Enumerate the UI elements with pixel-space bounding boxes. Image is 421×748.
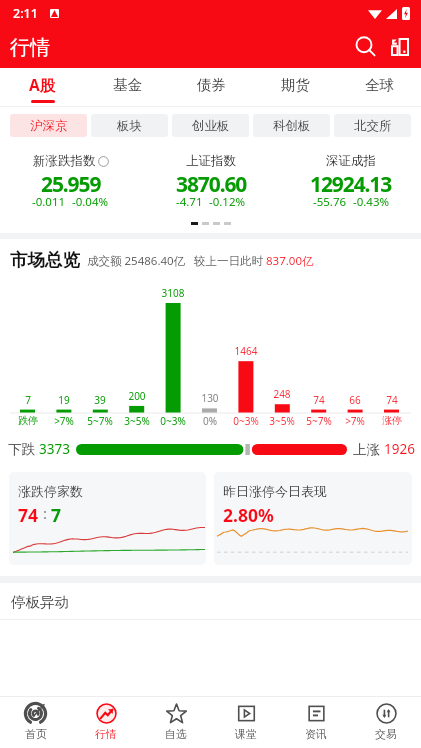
staticText: 深证成指 xyxy=(326,153,376,169)
staticText: 跌停 xyxy=(8,414,48,427)
staticText: 3~5% xyxy=(262,414,302,428)
staticText: 债券 xyxy=(197,76,226,94)
button[interactable]: 交易 xyxy=(351,697,421,748)
staticText: 涨停 xyxy=(372,414,412,427)
staticText: 资讯 xyxy=(305,727,327,741)
button[interactable]: 创业板 xyxy=(172,114,249,137)
button[interactable]: Market chart xyxy=(385,32,415,62)
staticText: 7 xyxy=(8,393,48,407)
staticText: >7% xyxy=(44,414,84,428)
staticText: 3870.60 xyxy=(176,170,247,199)
button[interactable]: 课堂 xyxy=(211,697,281,748)
staticText: 新涨跌指数 xyxy=(33,153,96,169)
button[interactable]: 基金 xyxy=(85,68,169,107)
staticText: 市场总览 xyxy=(10,249,80,271)
button[interactable]: 深证成指 xyxy=(281,143,421,222)
staticText: -55.76 xyxy=(313,194,347,210)
staticText: 上证指数 xyxy=(186,153,236,169)
staticText: 130 xyxy=(190,391,230,405)
staticText: 成交额 25486.40亿 xyxy=(87,253,186,269)
button[interactable]: 科创板 xyxy=(253,114,330,137)
staticText: -0.04% xyxy=(72,194,109,210)
staticText: 全球 xyxy=(365,76,394,94)
button[interactable]: 债券 xyxy=(169,68,253,107)
staticText: -4.71 xyxy=(176,194,203,210)
staticText: 0% xyxy=(190,414,230,428)
button[interactable]: 期货 xyxy=(253,68,337,107)
staticText: 停板异动 xyxy=(11,593,69,611)
staticText: 1926 xyxy=(384,440,415,458)
button[interactable]: 上证指数 xyxy=(141,143,281,222)
staticText: >7% xyxy=(335,414,375,428)
button[interactable]: 全球 xyxy=(337,68,421,107)
staticText: 12924.13 xyxy=(310,170,392,199)
staticText: 74 xyxy=(372,393,412,407)
staticText: 248 xyxy=(262,387,302,401)
staticText: 行情 xyxy=(95,727,117,741)
staticText: 2:11 xyxy=(13,5,38,22)
staticText: 期货 xyxy=(281,76,310,94)
staticText: 科创板 xyxy=(273,118,311,134)
staticText: 昨日涨停今日表现 xyxy=(223,483,327,499)
button[interactable]: 新涨跌指数 xyxy=(0,143,141,222)
staticText: 200 xyxy=(117,389,157,403)
button[interactable]: A股 xyxy=(0,68,85,107)
staticText: 7 xyxy=(51,503,62,527)
staticText: 创业板 xyxy=(192,118,230,134)
button[interactable]: 沪深京 xyxy=(10,114,87,137)
button[interactable]: Search xyxy=(351,32,381,62)
staticText: 涨跌停家数 xyxy=(18,483,83,499)
staticText: 74 xyxy=(18,503,39,527)
staticText: 3373 xyxy=(39,440,70,458)
staticText: 课堂 xyxy=(235,727,257,741)
staticText: 上涨 xyxy=(353,440,384,458)
staticText: 19 xyxy=(44,393,84,407)
button[interactable]: 行情 xyxy=(71,697,141,748)
staticText: -0.12% xyxy=(209,194,246,210)
staticText: A股 xyxy=(29,74,56,95)
staticText: 沪深京 xyxy=(30,118,68,134)
staticText: 25.959 xyxy=(41,170,101,199)
staticText: 行情 xyxy=(10,35,50,60)
staticText: 自选 xyxy=(165,727,187,741)
staticText: 1464 xyxy=(226,344,266,358)
button[interactable]: 自选 xyxy=(141,697,211,748)
button[interactable]: 涨跌停家数 xyxy=(9,472,206,565)
staticText: 66 xyxy=(335,393,375,407)
staticText: 板块 xyxy=(117,118,142,134)
staticText: -0.011 xyxy=(32,194,66,210)
button[interactable]: 昨日涨停今日表现 xyxy=(214,472,412,565)
staticText: -0.43% xyxy=(353,194,390,210)
button[interactable]: 资讯 xyxy=(281,697,351,748)
staticText: 3108 xyxy=(153,286,193,300)
staticText: 74 xyxy=(299,393,339,407)
staticText: 3~5% xyxy=(117,414,157,428)
staticText: 交易 xyxy=(375,727,397,741)
staticText: 837.00亿 xyxy=(266,253,314,269)
button[interactable]: 北交所 xyxy=(334,114,411,137)
staticText: 5~7% xyxy=(299,414,339,428)
staticText: 39 xyxy=(80,393,120,407)
button[interactable]: 首页 xyxy=(0,697,71,748)
staticText: 0~3% xyxy=(226,414,266,428)
staticText: 下跌 xyxy=(8,440,39,458)
staticText: 2.80% xyxy=(223,503,274,527)
staticText: 北交所 xyxy=(354,118,392,134)
button[interactable]: 停板异动 xyxy=(0,583,421,620)
staticText: 较上一日此时 xyxy=(194,253,266,269)
staticText: : xyxy=(39,503,51,523)
staticText: 首页 xyxy=(25,727,47,741)
staticText: 基金 xyxy=(113,76,142,94)
button[interactable]: 板块 xyxy=(91,114,168,137)
staticText: 0~3% xyxy=(153,414,193,428)
staticText: 5~7% xyxy=(80,414,120,428)
